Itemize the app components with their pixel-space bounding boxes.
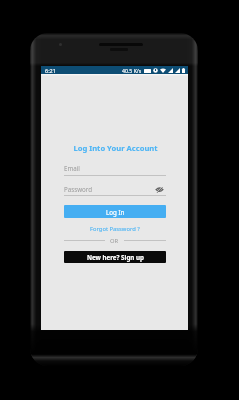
button[interactable]: Show password [156,186,163,193]
staticText: Log Into Your Account [73,143,158,153]
staticText: Email [64,164,166,172]
staticText: OR [110,237,119,245]
button[interactable]: Forgot Password ? [64,224,166,233]
staticText: 6:21 [45,67,56,74]
staticText: Forgot Password ? [90,225,140,233]
button[interactable]: New here? Sign up [64,251,166,263]
staticText: 40.5 K/s [122,67,142,74]
staticText: Password [64,185,159,193]
button[interactable]: Log In [64,205,166,218]
staticText: Log In [106,208,125,216]
staticText: New here? Sign up [87,253,144,261]
